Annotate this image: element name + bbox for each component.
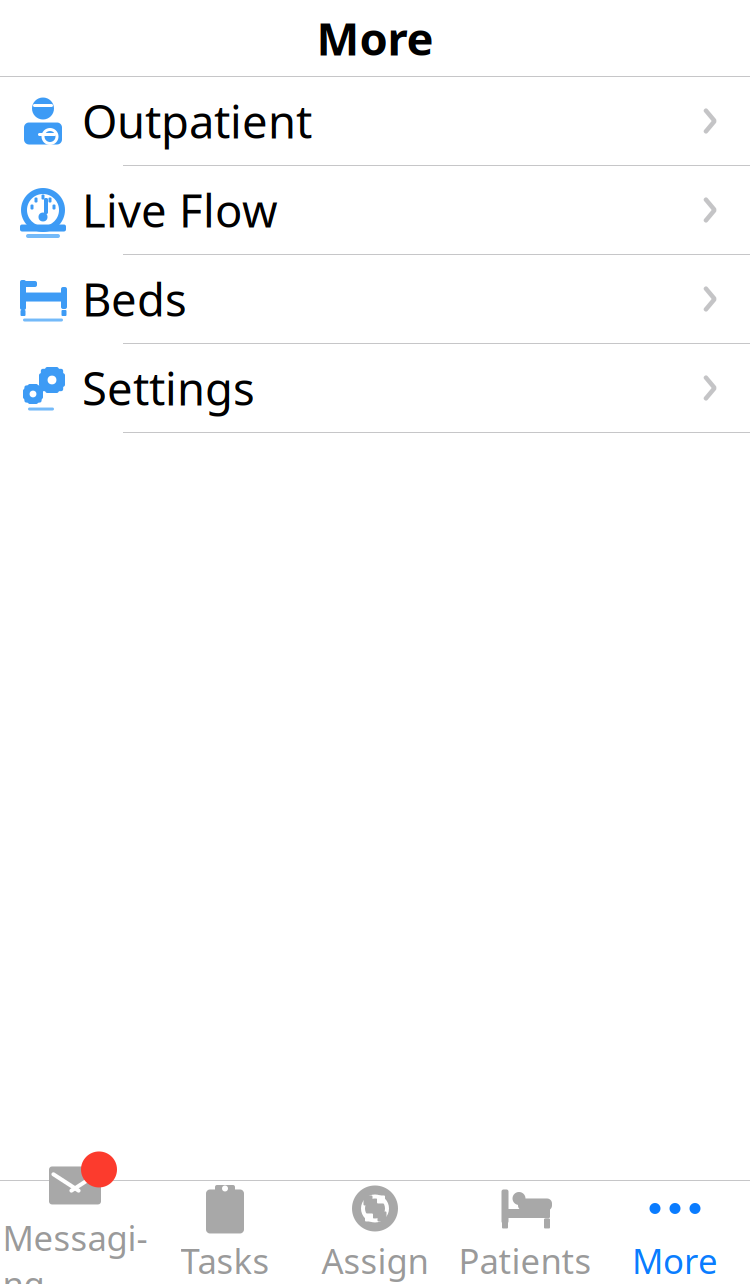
button[interactable]: Patients bbox=[450, 1175, 600, 1284]
button[interactable]: Settings bbox=[0, 344, 750, 433]
staticText: Messaging bbox=[2, 1214, 147, 1284]
button[interactable]: Assign bbox=[300, 1175, 450, 1284]
staticText: More bbox=[316, 8, 433, 68]
button[interactable]: Live Flow bbox=[0, 166, 750, 255]
button[interactable]: More bbox=[600, 1175, 750, 1284]
button[interactable]: Outpatient bbox=[0, 77, 750, 166]
staticText: Tasks bbox=[180, 1237, 269, 1283]
button[interactable]: Messaging bbox=[0, 1152, 150, 1284]
staticText: Outpatient bbox=[82, 91, 312, 151]
button[interactable]: Tasks bbox=[150, 1175, 300, 1284]
staticText: Beds bbox=[82, 269, 187, 329]
staticText: More bbox=[632, 1237, 718, 1283]
staticText: Live Flow bbox=[82, 180, 278, 240]
staticText: Assign bbox=[321, 1237, 428, 1283]
staticText: Settings bbox=[82, 358, 255, 418]
staticText: Patients bbox=[458, 1237, 591, 1283]
button[interactable]: Beds bbox=[0, 255, 750, 344]
